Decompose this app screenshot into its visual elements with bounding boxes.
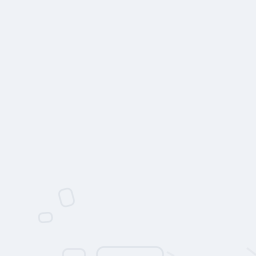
button[interactable]: Card (60, 189, 73, 206)
button[interactable]: Badge (39, 213, 52, 222)
button[interactable]: Primary action (97, 247, 163, 256)
button[interactable]: Option (63, 249, 85, 256)
